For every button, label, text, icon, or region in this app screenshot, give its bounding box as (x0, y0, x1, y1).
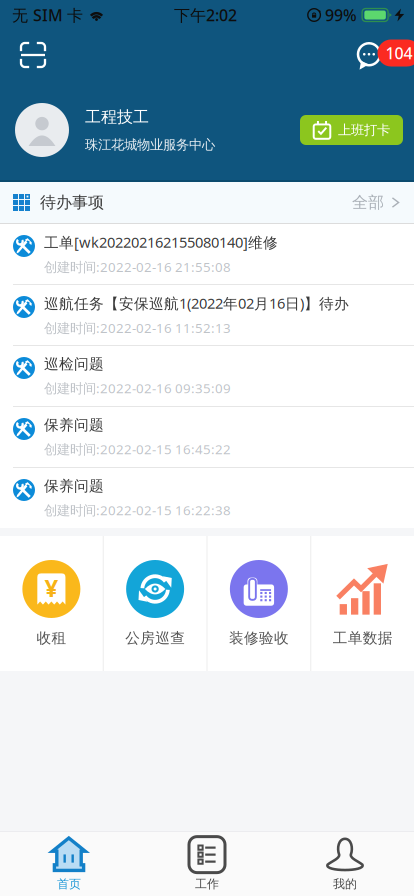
button[interactable]: ¥ (0, 538, 103, 669)
staticText: 保养问题 (44, 477, 104, 495)
staticText: 首页 (57, 877, 81, 891)
staticText: 创建时间:2022-02-15 16:22:38 (44, 501, 231, 519)
button[interactable]: 公房巡查 (104, 538, 207, 669)
button[interactable]: 装修验收 (207, 538, 310, 669)
staticText: 全部 (352, 193, 384, 212)
button[interactable]: 扫一扫 (10, 33, 56, 77)
staticText: 巡航任务【安保巡航1(2022年02月16日)】待办 (44, 293, 349, 313)
staticText: 工程技工 (85, 107, 149, 127)
staticText: 工单[wk202202162155080140]维修 (44, 232, 278, 252)
button[interactable]: 待办事项 (0, 182, 414, 223)
button[interactable]: 上班打卡 (300, 115, 403, 145)
staticText: 公房巡查 (125, 629, 185, 647)
staticText: 装修验收 (229, 629, 289, 647)
staticText: 104 (385, 42, 412, 64)
staticText: 下午2:02 (174, 4, 237, 26)
staticText: 无 SIM 卡 (12, 4, 83, 26)
staticText: 工作 (195, 877, 219, 891)
staticText: 创建时间:2022-02-16 09:35:09 (44, 379, 231, 397)
staticText: 创建时间:2022-02-15 16:45:22 (44, 440, 231, 458)
staticText: 待办事项 (40, 193, 104, 212)
button[interactable]: 首页 (0, 831, 138, 896)
button[interactable]: 工单数据 (311, 538, 414, 669)
staticText: ¥ (44, 572, 58, 604)
button[interactable]: 巡航任务【安保巡航1(2022年02月16日)】待办 (0, 285, 414, 346)
staticText: 巡检问题 (44, 355, 104, 373)
staticText: 工单数据 (333, 629, 393, 647)
button[interactable]: 工作 (138, 831, 276, 896)
button[interactable]: 我的 (276, 831, 414, 896)
button[interactable]: 消息 (349, 30, 413, 80)
staticText: 保养问题 (44, 416, 104, 434)
staticText: 创建时间:2022-02-16 21:55:08 (44, 258, 231, 276)
button[interactable]: 保养问题 (0, 468, 414, 528)
button[interactable]: 巡检问题 (0, 346, 414, 407)
button[interactable]: 保养问题 (0, 407, 414, 468)
staticText: 99% (321, 4, 357, 26)
staticText: 上班打卡 (338, 122, 390, 138)
staticText: 珠江花城物业服务中心 (85, 137, 215, 153)
staticText: 创建时间:2022-02-16 11:52:13 (44, 319, 231, 337)
staticText: 收租 (36, 629, 66, 647)
button[interactable]: 工单[wk202202162155080140]维修 (0, 224, 414, 285)
staticText: 我的 (333, 877, 357, 891)
